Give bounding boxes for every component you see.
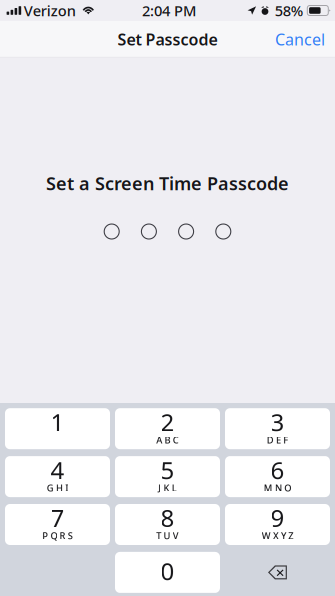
staticText: V	[173, 529, 179, 542]
staticText: W	[262, 529, 271, 542]
staticText: S	[68, 529, 73, 542]
staticText: Verizon	[24, 1, 76, 20]
button[interactable]: 5	[115, 456, 220, 497]
button[interactable]: 1	[5, 408, 110, 449]
staticText: J	[158, 482, 161, 494]
staticText: L	[172, 482, 177, 494]
staticText: 0	[160, 555, 174, 587]
staticText: 4	[50, 454, 64, 486]
staticText: G	[47, 482, 54, 494]
staticText: I	[65, 482, 68, 494]
button[interactable]: Delete	[225, 552, 330, 593]
staticText: U	[163, 529, 170, 542]
staticText: O	[284, 482, 291, 494]
staticText: X	[273, 529, 279, 542]
staticText: H	[56, 482, 63, 494]
staticText: Y	[281, 529, 286, 542]
button[interactable]: 8	[115, 504, 220, 545]
staticText: F	[283, 434, 288, 446]
staticText: Q	[50, 529, 57, 542]
staticText: B	[164, 434, 170, 446]
staticText: Set a Screen Time Passcode	[46, 171, 289, 195]
staticText: P	[42, 529, 48, 542]
staticText: M	[264, 482, 273, 494]
staticText: E	[276, 434, 281, 446]
button[interactable]: Cancel	[265, 22, 335, 57]
staticText: 58%	[275, 1, 303, 20]
staticText: 3	[270, 406, 284, 438]
staticText: 2	[160, 406, 174, 438]
staticText: C	[173, 434, 179, 446]
staticText: 7	[50, 502, 64, 534]
staticText: 5	[160, 454, 174, 486]
staticText: Cancel	[275, 29, 325, 50]
button[interactable]: 6	[225, 456, 330, 497]
staticText: Z	[288, 529, 293, 542]
button[interactable]: 9	[225, 504, 330, 545]
staticText: T	[156, 529, 161, 542]
staticText: 2:04 PM	[142, 1, 196, 20]
staticText: Set Passcode	[117, 29, 217, 50]
staticText: 6	[270, 454, 284, 486]
staticText: A	[156, 434, 162, 446]
button[interactable]: 3	[225, 408, 330, 449]
staticText: D	[267, 434, 274, 446]
staticText: R	[60, 529, 66, 542]
staticText: K	[163, 482, 169, 494]
staticText: 1	[50, 406, 64, 438]
button[interactable]: 0	[115, 552, 220, 593]
staticText: 8	[160, 502, 174, 534]
staticText: N	[275, 482, 282, 494]
staticText: 9	[270, 502, 284, 534]
button[interactable]: 7	[5, 504, 110, 545]
button[interactable]: 2	[115, 408, 220, 449]
button[interactable]: 4	[5, 456, 110, 497]
